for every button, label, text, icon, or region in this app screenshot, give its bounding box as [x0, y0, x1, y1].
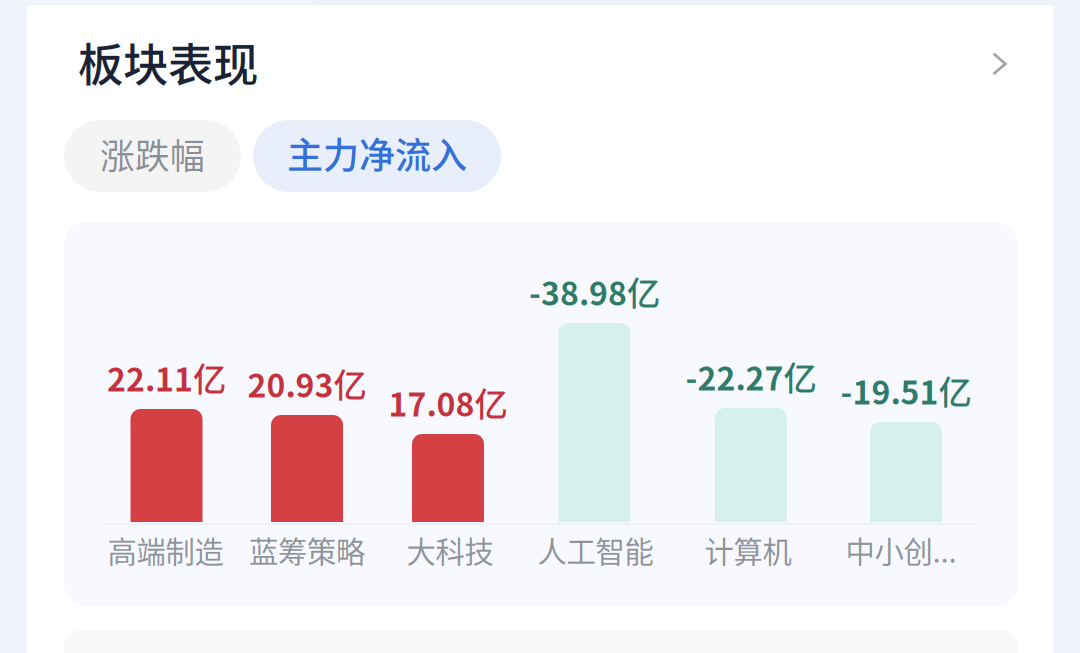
staticText: -22.27亿 [685, 352, 816, 400]
button[interactable]: 板块表现 [78, 39, 1007, 85]
staticText: 中小创... [845, 529, 956, 571]
staticText: 高端制造 [107, 529, 223, 571]
staticText: 蓝筹策略 [249, 529, 365, 571]
button[interactable]: 17.08亿 [0, 0, 300, 330]
staticText: 大科技 [406, 529, 493, 571]
staticText: 涨跌幅 [100, 129, 205, 179]
button[interactable]: 22.11亿 [0, 0, 300, 330]
staticText: -38.98亿 [529, 267, 660, 315]
button[interactable]: 涨跌幅 [64, 120, 241, 192]
staticText: 板块表现 [78, 29, 258, 95]
staticText: 20.93亿 [247, 359, 366, 407]
button[interactable]: -38.98亿 [0, 0, 300, 330]
staticText: 主力净流入 [287, 127, 467, 179]
button[interactable]: -19.51亿 [0, 0, 300, 330]
button[interactable]: -22.27亿 [0, 0, 300, 330]
staticText: 22.11亿 [107, 353, 226, 401]
staticText: 17.08亿 [388, 378, 507, 426]
staticText: 计算机 [704, 529, 791, 571]
staticText: 人工智能 [537, 529, 653, 571]
button[interactable]: 主力净流入 [253, 120, 501, 192]
staticText: -19.51亿 [840, 366, 971, 414]
button[interactable]: 20.93亿 [0, 0, 300, 330]
